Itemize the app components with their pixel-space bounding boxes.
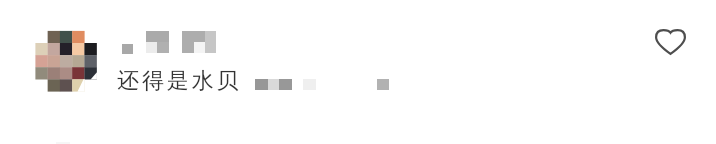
button[interactable]: User avatar [35, 30, 98, 93]
staticText: 还得是水贝 [117, 67, 242, 95]
button[interactable]: Like [648, 21, 692, 63]
